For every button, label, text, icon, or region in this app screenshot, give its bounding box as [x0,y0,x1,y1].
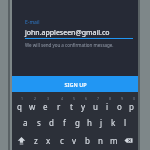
staticText: 3 [47,96,50,101]
staticText: 0 [133,96,136,101]
button[interactable]: m [107,131,120,149]
button[interactable]: 6 [77,94,89,113]
staticText: z [34,135,38,146]
button[interactable]: j [95,113,107,131]
staticText: john.appleseen@gmail.co [25,28,110,38]
staticText: h [87,117,92,128]
staticText: 5 [73,96,76,101]
button[interactable]: f [58,113,71,131]
staticText: s [37,117,41,128]
button[interactable]: 4 [52,94,65,113]
button[interactable]: b [81,131,94,149]
staticText: 7 [97,96,100,101]
staticText: m [110,135,118,146]
button[interactable]: 9 [113,94,125,113]
staticText: i [106,101,109,112]
staticText: k [111,117,116,128]
staticText: r [57,101,61,112]
button[interactable]: h [83,113,95,131]
staticText: 2 [34,96,37,101]
staticText: y [81,101,86,112]
staticText: g [75,117,80,128]
staticText: SIGN UP [64,81,87,88]
staticText: n [98,135,103,146]
staticText: t [70,101,73,112]
button[interactable]: Shift [13,131,29,149]
staticText: e [43,101,48,112]
staticText: f [63,117,66,128]
staticText: w [29,101,36,112]
staticText: a [23,117,28,128]
button[interactable]: 7 [89,94,101,113]
staticText: b [85,135,90,146]
button[interactable]: 1 [13,94,26,113]
staticText: d [49,117,54,128]
staticText: 4 [61,96,64,101]
staticText: p [129,101,134,112]
button[interactable]: n [94,131,107,149]
button[interactable]: 8 [101,94,113,113]
staticText: 6 [85,96,88,101]
button[interactable]: 5 [65,94,77,113]
button[interactable]: s [32,113,45,131]
button[interactable]: a [19,113,32,131]
button[interactable]: v [68,131,81,149]
button[interactable]: x [42,131,55,149]
staticText: We will send you a confirmation message. [25,42,114,48]
staticText: c [60,135,64,146]
staticText: v [72,135,77,146]
button[interactable]: 2 [26,94,39,113]
staticText: 9 [121,96,124,101]
staticText: 1 [21,96,24,101]
button[interactable]: g [71,113,83,131]
staticText: 8 [109,96,112,101]
button[interactable]: k [107,113,119,131]
staticText: l [124,117,127,128]
button[interactable]: l [119,113,131,131]
staticText: u [93,101,98,112]
button[interactable]: z [29,131,42,149]
button[interactable]: d [45,113,58,131]
staticText: o [117,101,122,112]
button[interactable]: Backspace [120,131,137,149]
button[interactable]: c [55,131,68,149]
staticText: j [100,117,103,128]
button[interactable]: SIGN UP [12,76,138,92]
staticText: E-mail [25,19,40,26]
staticText: q [17,101,22,112]
staticText: x [46,135,51,146]
button[interactable]: 0 [125,94,137,113]
button[interactable]: john.appleseen@gmail.co [25,28,133,38]
button[interactable]: 3 [39,94,52,113]
